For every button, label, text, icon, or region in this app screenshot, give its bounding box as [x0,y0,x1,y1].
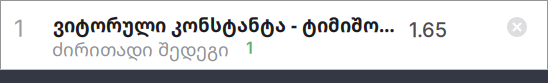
staticText: ძირითადი შედეგი [52,36,229,62]
staticText: 1 [14,13,24,42]
staticText: ვიტორული კონსტანტა - ტიმიშო… [53,12,395,38]
button[interactable]: Remove [495,5,539,49]
staticText: 1.65 [409,18,447,42]
button[interactable]: 1 [0,0,548,69]
staticText: 1 [246,38,253,58]
